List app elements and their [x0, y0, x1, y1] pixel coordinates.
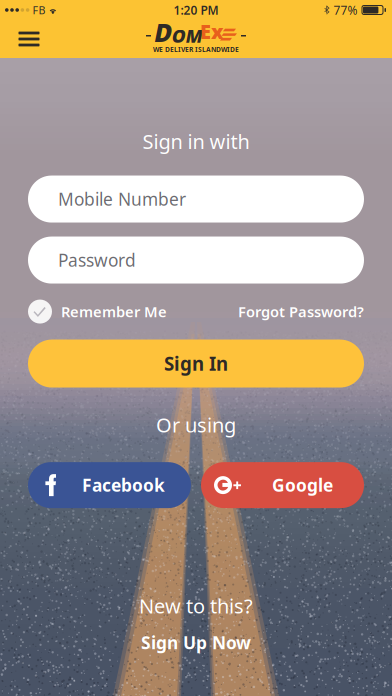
- button[interactable]: Google: [201, 462, 364, 508]
- staticText: Facebook: [82, 474, 165, 497]
- button[interactable]: Sign In: [28, 340, 364, 388]
- staticText: FB: [32, 3, 45, 17]
- staticText: Mobile Number: [58, 188, 186, 211]
- staticText: Or using: [156, 412, 236, 438]
- staticText: 1:20 PM: [173, 2, 218, 18]
- staticText: Forgot Password?: [238, 302, 364, 321]
- button[interactable]: Remember Me: [28, 300, 167, 324]
- staticText: Google: [272, 474, 333, 497]
- staticText: Password: [58, 249, 136, 272]
- staticText: Sign Up Now: [141, 631, 251, 654]
- staticText: WE DELIVER ISLANDWIDE: [153, 45, 239, 54]
- button[interactable]: Forgot Password?: [238, 302, 364, 321]
- staticText: 77%: [333, 2, 357, 18]
- button[interactable]: Sign Up Now: [141, 631, 251, 654]
- button[interactable]: Menu: [0, 20, 58, 58]
- staticText: OM: [174, 24, 205, 47]
- staticText: Sign In: [164, 351, 228, 376]
- staticText: Sign in with: [142, 128, 249, 155]
- staticText: Remember Me: [61, 302, 167, 321]
- staticText: Ex: [200, 18, 224, 44]
- staticText: New to this?: [139, 592, 253, 619]
- staticText: D: [156, 17, 174, 48]
- button[interactable]: Facebook: [28, 462, 191, 508]
